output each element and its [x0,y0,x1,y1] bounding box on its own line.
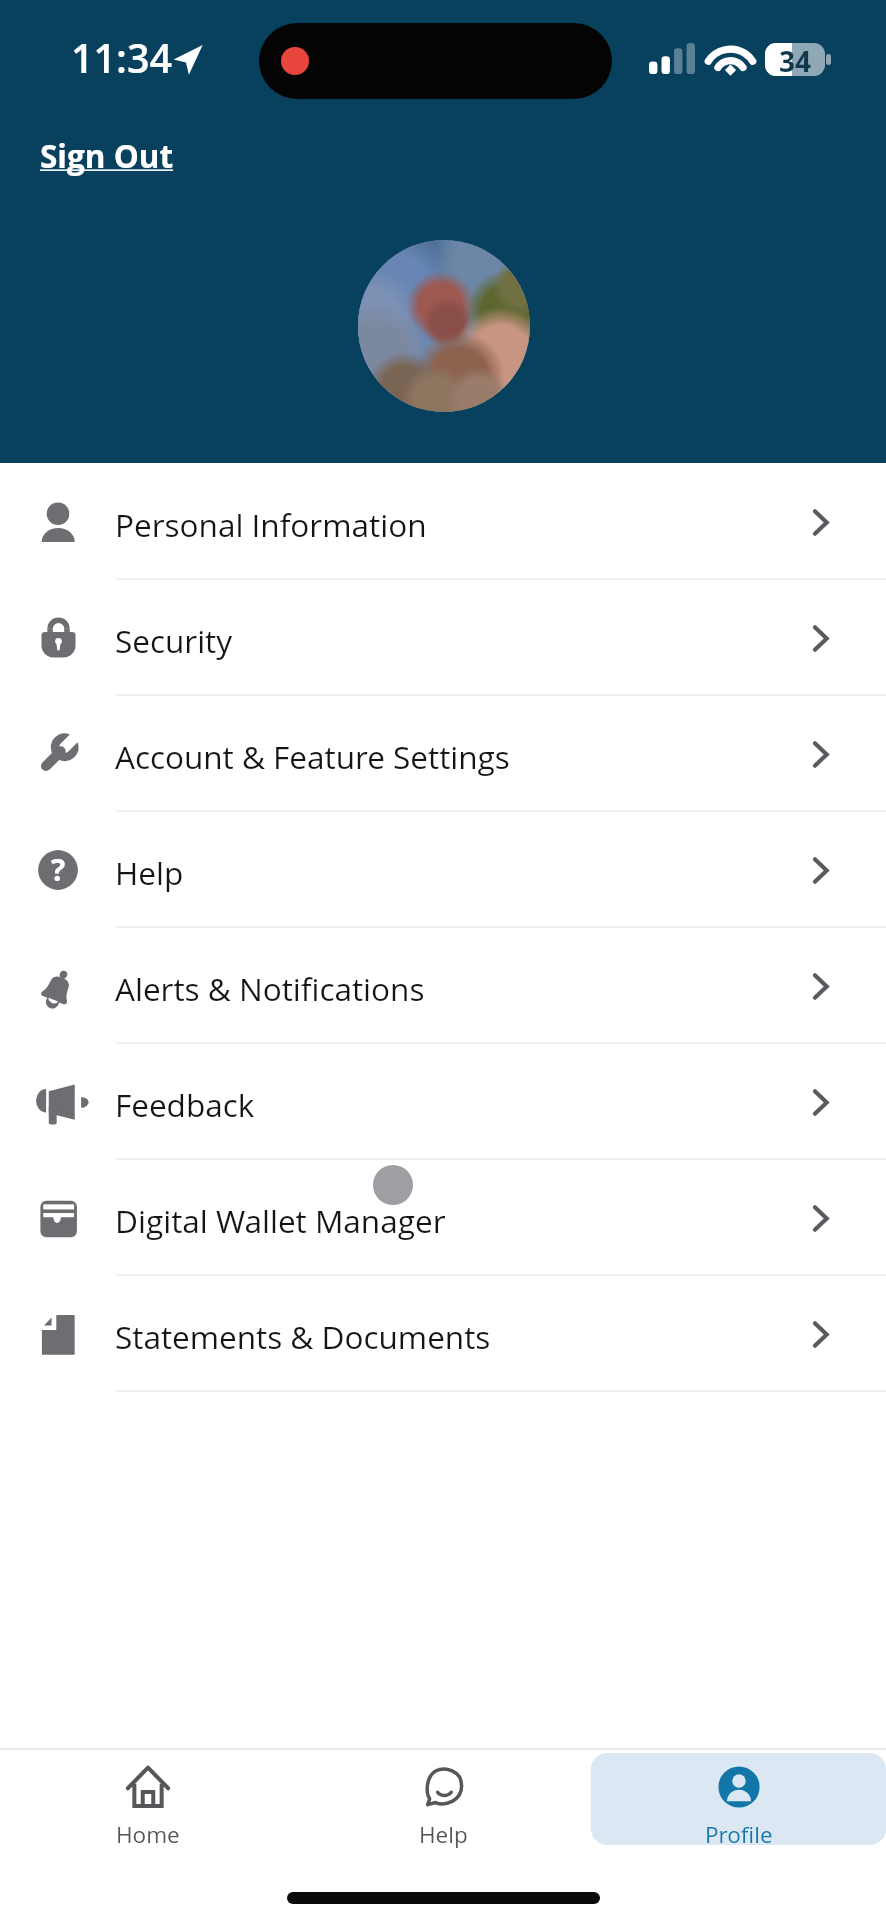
staticText: 34 [779,43,811,75]
button[interactable]: Feedback [0,1044,886,1160]
staticText: Feedback [115,1083,255,1126]
button[interactable]: ? [0,812,886,928]
button[interactable]: Digital Wallet Manager [0,1160,886,1276]
staticText: Sign Out [40,134,174,177]
staticText: Alerts & Notifications [115,967,425,1010]
button[interactable]: Profile photo [358,240,530,412]
staticText: Help [115,851,184,894]
staticText: Personal Information [115,503,427,546]
button[interactable]: Sign Out [40,134,174,177]
staticText: ? [51,849,66,890]
button[interactable]: Account & Feature Settings [0,696,886,812]
staticText: Digital Wallet Manager [115,1199,446,1242]
button[interactable]: Statements & Documents [0,1276,886,1392]
staticText: Security [115,619,233,662]
staticText: Account & Feature Settings [115,735,510,778]
button[interactable]: Profile [591,1748,886,1920]
staticText: Profile [705,1819,773,1850]
staticText: Statements & Documents [115,1315,491,1358]
button[interactable]: Alerts & Notifications [0,928,886,1044]
button[interactable]: Security [0,580,886,696]
staticText: Home [116,1819,180,1850]
button[interactable]: Home [0,1748,296,1920]
staticText: Help [419,1819,468,1850]
button[interactable]: Help [296,1748,591,1920]
button[interactable]: Personal Information [0,464,886,580]
staticText: 11:34 [71,31,173,85]
